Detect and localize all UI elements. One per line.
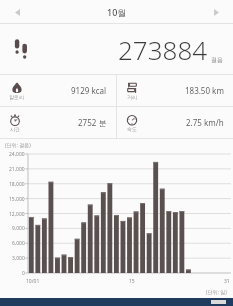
staticText: 거리 bbox=[127, 94, 137, 100]
staticText: 10월 bbox=[107, 6, 127, 18]
staticText: (단위: 걸음) bbox=[5, 142, 31, 149]
staticText: 걸음 bbox=[211, 56, 223, 64]
staticText: 24,000 bbox=[9, 151, 25, 158]
staticText: 6,000 bbox=[12, 240, 25, 247]
staticText: 3,000 bbox=[12, 255, 25, 262]
staticText: 31 bbox=[224, 278, 230, 285]
button[interactable]: 거리 bbox=[117, 75, 233, 106]
staticText: 273884 bbox=[118, 32, 208, 67]
staticText: 15 bbox=[129, 278, 135, 285]
staticText: 15,000 bbox=[9, 196, 25, 203]
button[interactable]: Next month bbox=[207, 3, 225, 21]
staticText: 칼로리 bbox=[9, 94, 24, 100]
staticText: 10/01 bbox=[26, 278, 40, 285]
staticText: 시간 bbox=[10, 126, 20, 132]
staticText: 0 bbox=[22, 270, 25, 277]
staticText: 2752 분 bbox=[78, 117, 107, 128]
staticText: 18,000 bbox=[9, 181, 25, 188]
staticText: 183.50 km bbox=[185, 85, 224, 96]
button[interactable]: Previous month bbox=[8, 3, 26, 21]
button[interactable]: 칼로리 bbox=[0, 75, 116, 106]
staticText: 속도 bbox=[127, 126, 137, 132]
button[interactable]: 273884 bbox=[0, 24, 233, 74]
button[interactable]: 속도 bbox=[117, 107, 233, 138]
staticText: 9129 kcal bbox=[71, 85, 107, 96]
staticText: 21,000 bbox=[9, 166, 25, 173]
button[interactable]: 시간 bbox=[0, 107, 116, 138]
staticText: 9,000 bbox=[12, 225, 25, 232]
staticText: (단위: 일) bbox=[206, 289, 227, 296]
staticText: 12,000 bbox=[9, 211, 25, 218]
staticText: 2.75 km/h bbox=[186, 117, 224, 128]
